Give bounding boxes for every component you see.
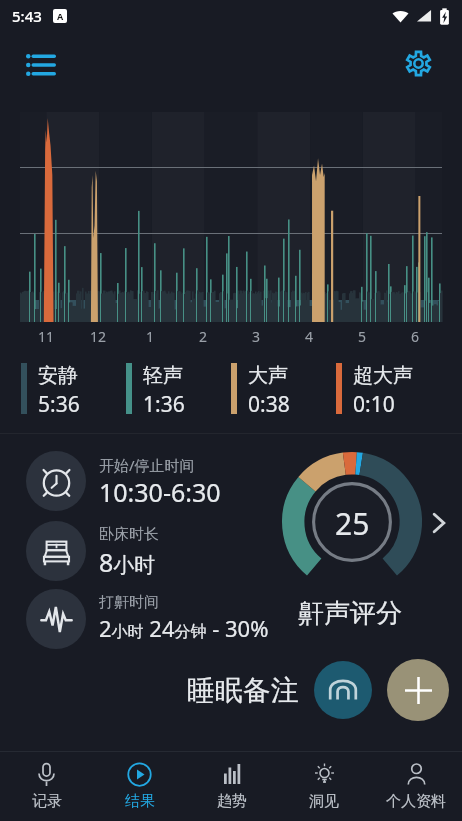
staticText: 鼾声评分: [298, 597, 402, 630]
button[interactable]: 记录: [0, 752, 93, 821]
staticText: 开始/停止时间: [99, 455, 195, 475]
staticText: 安静: [38, 363, 78, 388]
staticText: 睡眠备注: [187, 673, 299, 708]
staticText: 洞见: [309, 792, 339, 811]
staticText: 个人资料: [386, 792, 446, 811]
staticText: 8小时: [99, 545, 156, 579]
staticText: 5: [358, 327, 367, 346]
staticText: 12: [90, 327, 107, 346]
button[interactable]: 结果: [93, 752, 186, 821]
staticText: 卧床时长: [99, 525, 159, 544]
staticText: 2: [199, 327, 208, 346]
staticText: 结果: [125, 792, 155, 811]
button[interactable]: 个人资料: [370, 752, 462, 821]
button[interactable]: 卧床时长: [26, 521, 462, 585]
button[interactable]: Sleep note: [314, 661, 372, 719]
staticText: 0:38: [248, 390, 290, 419]
staticText: 5:43: [12, 6, 42, 26]
button[interactable]: 打鼾时间: [26, 589, 462, 653]
staticText: 3: [252, 327, 261, 346]
button[interactable]: 趋势: [186, 752, 278, 821]
staticText: 10:30-6:30: [99, 475, 221, 509]
button[interactable]: Next: [424, 508, 454, 538]
staticText: 0:10: [353, 390, 395, 419]
button[interactable]: Add: [387, 659, 449, 721]
button[interactable]: Settings: [392, 37, 444, 89]
staticText: 1:36: [143, 390, 185, 419]
staticText: 打鼾时间: [99, 593, 159, 612]
button[interactable]: Menu: [15, 39, 67, 91]
staticText: 记录: [32, 792, 62, 811]
staticText: 大声: [248, 363, 288, 388]
staticText: 超大声: [353, 363, 413, 388]
staticText: 5:36: [38, 390, 80, 419]
staticText: 1: [146, 327, 155, 346]
staticText: 2小时 24分钟 - 30%: [99, 613, 269, 643]
staticText: 4: [305, 327, 314, 346]
staticText: 轻声: [143, 363, 183, 388]
staticText: 6: [411, 327, 420, 346]
button[interactable]: 洞见: [278, 752, 370, 821]
staticText: 11: [38, 327, 55, 346]
staticText: A: [57, 10, 64, 22]
staticText: 25: [335, 503, 370, 544]
button[interactable]: 开始/停止时间: [26, 451, 462, 515]
staticText: 趋势: [217, 792, 247, 811]
